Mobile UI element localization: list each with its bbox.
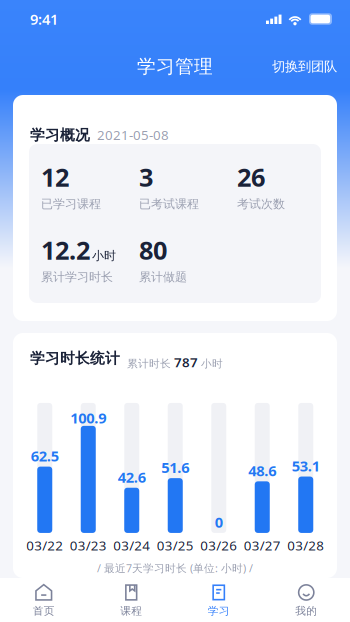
staticText: 12.2 xyxy=(41,233,90,267)
staticText: 42.6 xyxy=(118,467,146,487)
staticText: 787 xyxy=(174,353,198,371)
staticText: 小时 xyxy=(92,248,116,263)
staticText: 03/25 xyxy=(157,537,194,554)
button[interactable]: 课程 xyxy=(87,578,175,622)
staticText: 9:41 xyxy=(30,9,58,29)
staticText: 62.5 xyxy=(31,446,59,466)
staticText: 3 xyxy=(139,160,153,194)
staticText: 学习管理 xyxy=(137,55,213,78)
staticText: 0 xyxy=(215,512,223,532)
staticText: 80 xyxy=(139,233,167,267)
staticText: 03/24 xyxy=(113,537,150,554)
staticText: 已考试课程 xyxy=(139,197,199,211)
button[interactable]: 学习 xyxy=(175,578,262,622)
staticText: 53.1 xyxy=(292,456,320,476)
staticText: 03/28 xyxy=(287,537,324,554)
staticText: 小时 xyxy=(201,357,223,370)
button[interactable]: 首页 xyxy=(0,578,87,622)
staticText: 03/26 xyxy=(200,537,237,554)
staticText: 学习 xyxy=(208,604,230,617)
staticText: 已学习课程 xyxy=(41,197,101,211)
staticText: 课程 xyxy=(120,604,142,617)
staticText: 03/27 xyxy=(244,537,281,554)
staticText: 100.9 xyxy=(70,408,106,428)
staticText: 学习时长统计 xyxy=(30,349,120,367)
staticText: 累计学习时长 xyxy=(41,270,113,284)
staticText: 首页 xyxy=(33,604,55,617)
staticText: / 最近7天学习时长 (单位: 小时) / xyxy=(97,561,253,575)
staticText: 我的 xyxy=(295,604,317,617)
staticText: 03/23 xyxy=(70,537,107,554)
staticText: 51.6 xyxy=(161,458,189,477)
staticText: 26 xyxy=(237,160,265,194)
staticText: 03/22 xyxy=(26,537,63,554)
staticText: 考试次数 xyxy=(237,197,285,211)
button[interactable]: 我的 xyxy=(262,578,350,622)
staticText: 累计时长 xyxy=(127,357,171,370)
staticText: 学习概况 xyxy=(30,126,90,144)
staticText: 累计做题 xyxy=(139,270,187,284)
staticText: 48.6 xyxy=(248,461,276,480)
staticText: 2021-05-08 xyxy=(97,126,169,144)
button[interactable]: 切换到团队 xyxy=(272,52,337,81)
staticText: 切换到团队 xyxy=(272,58,337,75)
staticText: 12 xyxy=(41,160,69,194)
